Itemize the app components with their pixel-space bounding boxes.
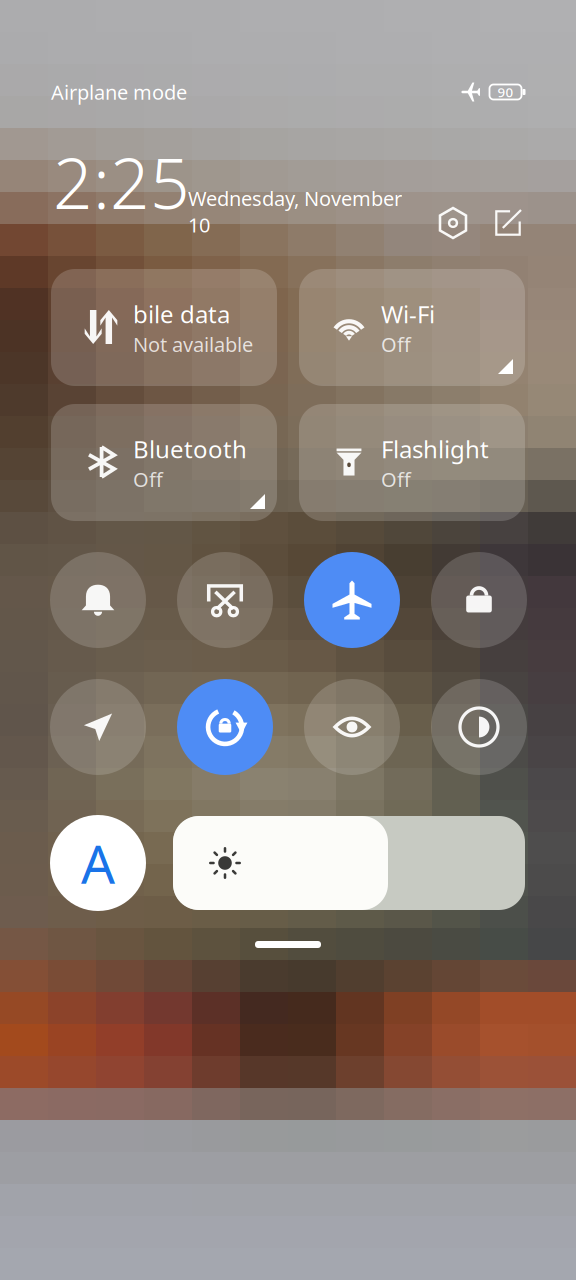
button[interactable]: Dark mode [431, 679, 527, 775]
staticText: Wi-Fi [381, 298, 435, 330]
staticText: Bluetooth [133, 433, 247, 465]
staticText: 2:25 [53, 136, 190, 228]
button[interactable]: Eye comfort [304, 679, 400, 775]
staticText: Wednesday, November 10 [188, 185, 402, 238]
button[interactable]: Location [50, 679, 146, 775]
staticText: Off [381, 331, 411, 357]
staticText: Off [133, 466, 163, 492]
button[interactable]: Silent [50, 552, 146, 648]
button[interactable]: Bluetooth [51, 404, 277, 521]
button[interactable]: Rotation lock [177, 679, 273, 775]
button[interactable]: Lock [431, 552, 527, 648]
staticText: A [81, 828, 115, 898]
button[interactable]: Edit [486, 201, 530, 245]
staticText: 90 [497, 83, 513, 101]
staticText: Not available [133, 331, 253, 357]
staticText: Flashlight [381, 433, 489, 465]
button[interactable]: Airplane mode [304, 552, 400, 648]
button[interactable]: Settings [431, 201, 475, 245]
button[interactable]: Auto brightness [50, 815, 146, 911]
staticText: Airplane mode [51, 79, 187, 105]
button[interactable]: Wi-Fi [299, 269, 525, 386]
staticText: bile data [133, 298, 230, 330]
button[interactable]: Brightness [173, 816, 525, 910]
button[interactable]: Flashlight [299, 404, 525, 521]
button[interactable]: Screen cast [177, 552, 273, 648]
staticText: Off [381, 466, 411, 492]
button[interactable]: bile data [51, 269, 277, 386]
